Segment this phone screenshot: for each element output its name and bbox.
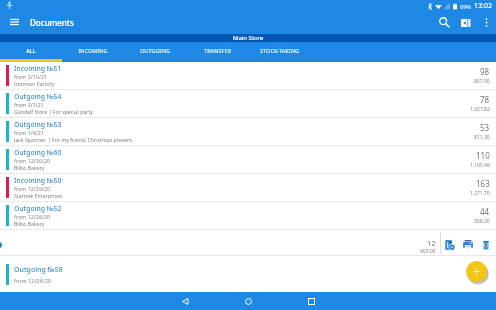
staticText: from 1/4/21 — [14, 129, 45, 136]
button[interactable]: Outgoing №53 — [0, 118, 496, 146]
staticText: from 12/24/20 — [14, 277, 51, 284]
button[interactable]: More options — [477, 11, 496, 34]
button[interactable]: Outgoing №52 — [0, 202, 496, 230]
staticText: from 2/1/21 — [14, 101, 45, 108]
staticText: 163 — [476, 178, 490, 189]
staticText: Outgoing №58 — [14, 265, 63, 275]
staticText: INCOMING — [78, 47, 108, 54]
staticText: Bilbo Bakery — [14, 164, 45, 171]
button[interactable]: OUTGOING — [124, 42, 186, 62]
staticText: 857.50 — [474, 78, 490, 85]
staticText: Documents — [30, 17, 74, 28]
staticText: 98 — [480, 66, 490, 77]
button[interactable]: Incoming №50 — [0, 174, 496, 202]
staticText: 99% — [460, 3, 471, 10]
staticText: ALL — [26, 47, 36, 54]
staticText: 12 — [427, 238, 436, 248]
button[interactable]: Recents — [283, 292, 339, 310]
button[interactable]: Search — [433, 11, 455, 34]
button[interactable]: ALL — [0, 42, 62, 62]
button[interactable]: Back — [157, 292, 213, 310]
staticText: Outgoing №53 — [14, 120, 62, 129]
staticText: 811.30 — [474, 134, 490, 141]
staticText: from 12/26/20 — [14, 213, 51, 220]
button[interactable]: TRANSFER — [186, 42, 248, 62]
staticText: from 12/29/20 — [14, 185, 51, 192]
button[interactable]: Outgoing №60 — [0, 146, 496, 174]
button[interactable]: Outgoing №54 — [0, 90, 496, 118]
staticText: OUTGOING — [140, 47, 170, 54]
staticText: from 2/10/21 — [14, 73, 48, 80]
button[interactable]: INCOMING — [62, 42, 124, 62]
staticText: Bilbo Bakery — [14, 220, 45, 227]
staticText: Incoming №50 — [14, 176, 62, 185]
staticText: 1,271.70 — [470, 190, 490, 197]
staticText: 1,105.48 — [470, 162, 490, 169]
staticText: 1,927.82 — [470, 106, 490, 113]
button[interactable]: Print — [459, 236, 477, 254]
staticText: Startrek Enterprises — [14, 192, 63, 199]
staticText: Outgoing №60 — [14, 148, 62, 157]
staticText: 44 — [480, 206, 490, 217]
button[interactable]: Delete — [477, 236, 495, 254]
staticText: 78 — [480, 94, 490, 105]
staticText: from 12/30/20 — [14, 157, 51, 164]
staticText: Main Store — [233, 34, 264, 42]
staticText: Jack Sparrow | For my friend, Christmas … — [14, 136, 133, 143]
staticText: STOCK-TAKING — [260, 47, 299, 54]
button[interactable]: Select all — [0, 242, 2, 248]
staticText: 600.00 — [420, 248, 436, 255]
button[interactable]: Home — [220, 292, 276, 310]
button[interactable]: Menu — [0, 11, 21, 34]
button[interactable]: Send — [441, 236, 459, 254]
button[interactable]: Incoming №51 — [0, 62, 496, 90]
staticText: 53 — [480, 122, 490, 133]
staticText: Outgoing №52 — [14, 204, 62, 213]
staticText: 110 — [476, 150, 490, 161]
staticText: 13:02 — [474, 1, 492, 11]
button[interactable]: STOCK-TAKING — [248, 42, 310, 62]
button[interactable]: Outgoing №58 — [0, 256, 496, 292]
staticText: Ironman Factory — [14, 80, 55, 87]
staticText: Gandalf Store | For special party — [14, 108, 93, 115]
button[interactable]: Add document — [466, 261, 487, 282]
staticText: Outgoing №54 — [14, 92, 62, 101]
staticText: TRANSFER — [204, 47, 231, 54]
button[interactable]: Exit — [455, 11, 477, 34]
staticText: Incoming №51 — [14, 64, 62, 73]
staticText: 306.20 — [474, 218, 490, 225]
